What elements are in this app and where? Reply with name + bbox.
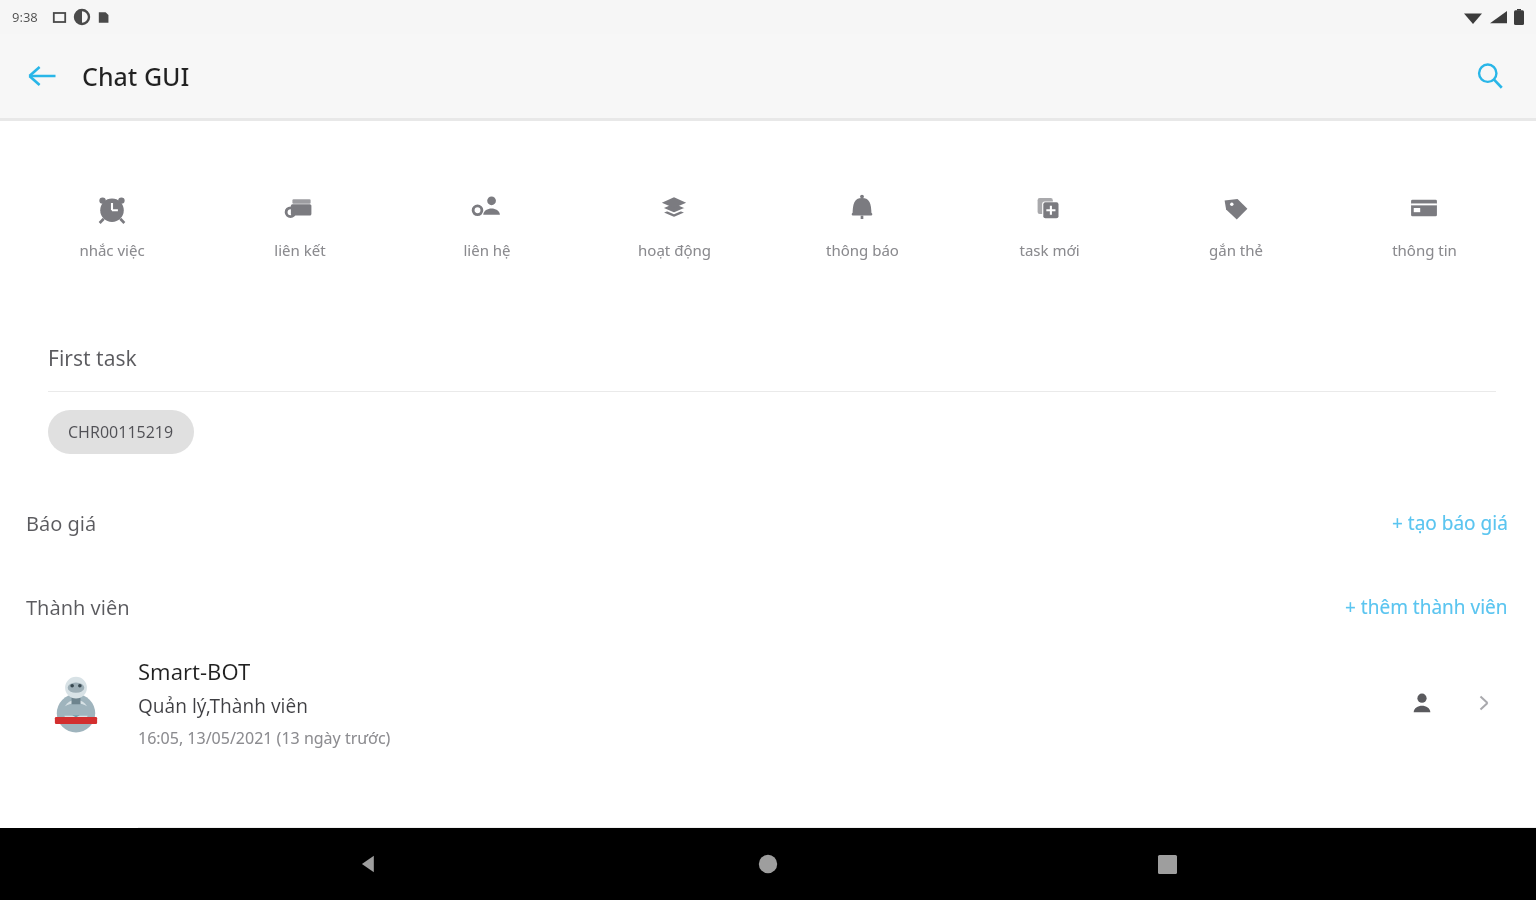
staticText: liên kết <box>274 240 326 260</box>
staticText: 16:05, 13/05/2021 (13 ngày trước) <box>138 727 391 749</box>
staticText: Thành viên <box>26 594 130 621</box>
button[interactable]: Back <box>339 834 399 894</box>
button[interactable]: thông báo <box>787 183 937 266</box>
staticText: + thêm thành viên <box>1345 594 1508 620</box>
staticText: Smart-BOT <box>138 656 251 686</box>
button[interactable]: Member role <box>1398 679 1446 727</box>
button[interactable]: Recent apps <box>1137 834 1197 894</box>
button[interactable]: Back <box>14 48 70 104</box>
button[interactable]: + thêm thành viên <box>1341 590 1512 624</box>
button[interactable]: hoạt động <box>599 183 749 266</box>
staticText: gắn thẻ <box>1209 240 1263 260</box>
button[interactable]: liên kết <box>225 183 375 266</box>
button[interactable]: Home <box>738 834 798 894</box>
button[interactable]: Smart-BOT <box>0 646 1536 763</box>
button[interactable]: + tạo báo giá <box>1388 506 1512 540</box>
staticText: Quản lý,Thành viên <box>138 693 308 719</box>
button[interactable]: Search <box>1462 48 1518 104</box>
staticText: task mới <box>1019 240 1080 260</box>
staticText: Chat GUI <box>82 59 190 93</box>
button[interactable]: Open member details <box>1460 679 1508 727</box>
button[interactable]: task mới <box>974 183 1124 266</box>
staticText: CHR00115219 <box>68 421 174 443</box>
staticText: thông tin <box>1392 240 1457 260</box>
button[interactable]: gắn thẻ <box>1161 183 1311 266</box>
staticText: First task <box>48 344 137 373</box>
staticText: liên hệ <box>463 240 511 260</box>
staticText: 9:38 <box>12 8 38 26</box>
button[interactable]: CHR00115219 <box>48 410 194 454</box>
button[interactable]: thông tin <box>1349 183 1499 266</box>
staticText: + tạo báo giá <box>1392 510 1508 536</box>
button[interactable]: liên hệ <box>412 183 562 266</box>
button[interactable]: nhắc việc <box>37 183 187 266</box>
staticText: nhắc việc <box>79 240 145 260</box>
staticText: thông báo <box>826 240 899 260</box>
staticText: hoạt động <box>638 240 711 260</box>
staticText: Báo giá <box>26 510 97 537</box>
